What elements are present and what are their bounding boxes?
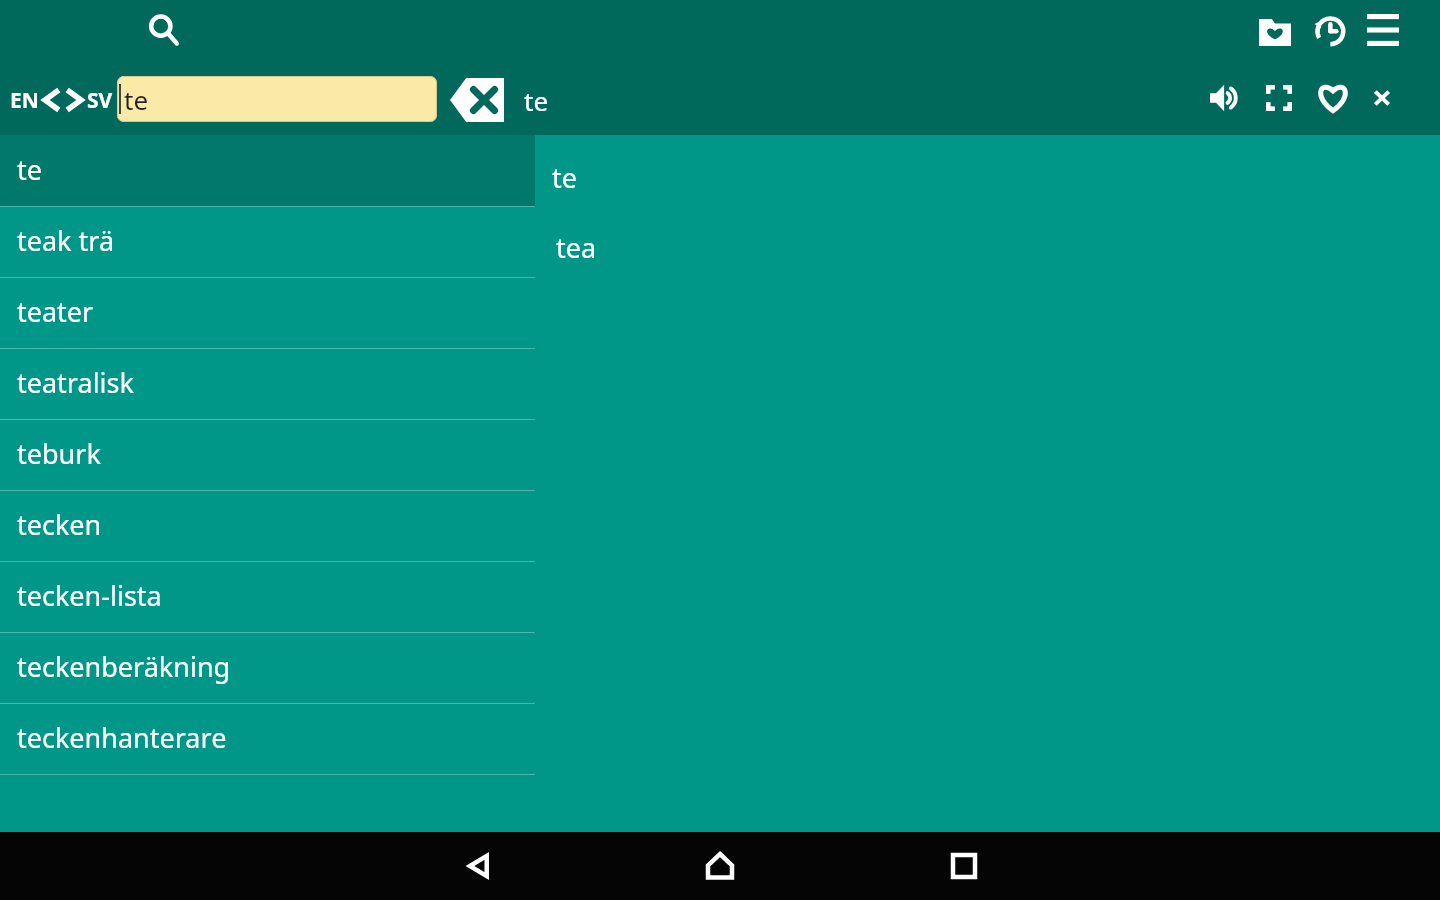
button[interactable]: teckenhanterare bbox=[0, 703, 535, 774]
button[interactable]: History bbox=[1302, 3, 1356, 57]
staticText: teckenhanterare bbox=[17, 719, 227, 756]
staticText: te bbox=[552, 159, 577, 196]
button[interactable]: Add to favourites bbox=[1306, 71, 1360, 125]
button[interactable]: teckenberäkning bbox=[0, 632, 535, 703]
button[interactable]: Fullscreen bbox=[1252, 71, 1306, 125]
staticText: teatralisk bbox=[17, 364, 134, 401]
staticText: te bbox=[524, 83, 549, 118]
button[interactable]: teatralisk bbox=[0, 348, 535, 419]
staticText: tecken-lista bbox=[17, 577, 162, 614]
button[interactable]: Clear bbox=[449, 74, 505, 126]
staticText: teak trä bbox=[17, 222, 115, 259]
staticText: te bbox=[124, 82, 149, 117]
staticText: SV bbox=[87, 86, 113, 115]
button[interactable]: Menu bbox=[1356, 3, 1410, 57]
button[interactable]: Home bbox=[692, 832, 748, 900]
button[interactable]: teburk bbox=[0, 419, 535, 490]
button[interactable]: Recents bbox=[936, 832, 992, 900]
button[interactable]: te bbox=[117, 76, 437, 122]
button[interactable]: teater bbox=[0, 277, 535, 348]
button[interactable]: Pronounce bbox=[1198, 71, 1252, 125]
button[interactable]: Favourites folder bbox=[1248, 3, 1302, 57]
staticText: te bbox=[17, 151, 42, 188]
button[interactable]: teak trä bbox=[0, 206, 535, 277]
button[interactable]: tecken-lista bbox=[0, 561, 535, 632]
button[interactable]: EN bbox=[0, 85, 117, 115]
button[interactable]: Back bbox=[452, 832, 508, 900]
button[interactable]: Close bbox=[1360, 76, 1404, 120]
staticText: tecken bbox=[17, 506, 102, 543]
staticText: teckenberäkning bbox=[17, 648, 231, 685]
button[interactable]: Search bbox=[138, 4, 190, 56]
staticText: EN bbox=[10, 86, 39, 115]
staticText: tea bbox=[556, 229, 597, 266]
button[interactable]: tecken bbox=[0, 490, 535, 561]
button[interactable]: te bbox=[0, 135, 535, 206]
staticText: teater bbox=[17, 293, 94, 330]
staticText: teburk bbox=[17, 435, 101, 472]
